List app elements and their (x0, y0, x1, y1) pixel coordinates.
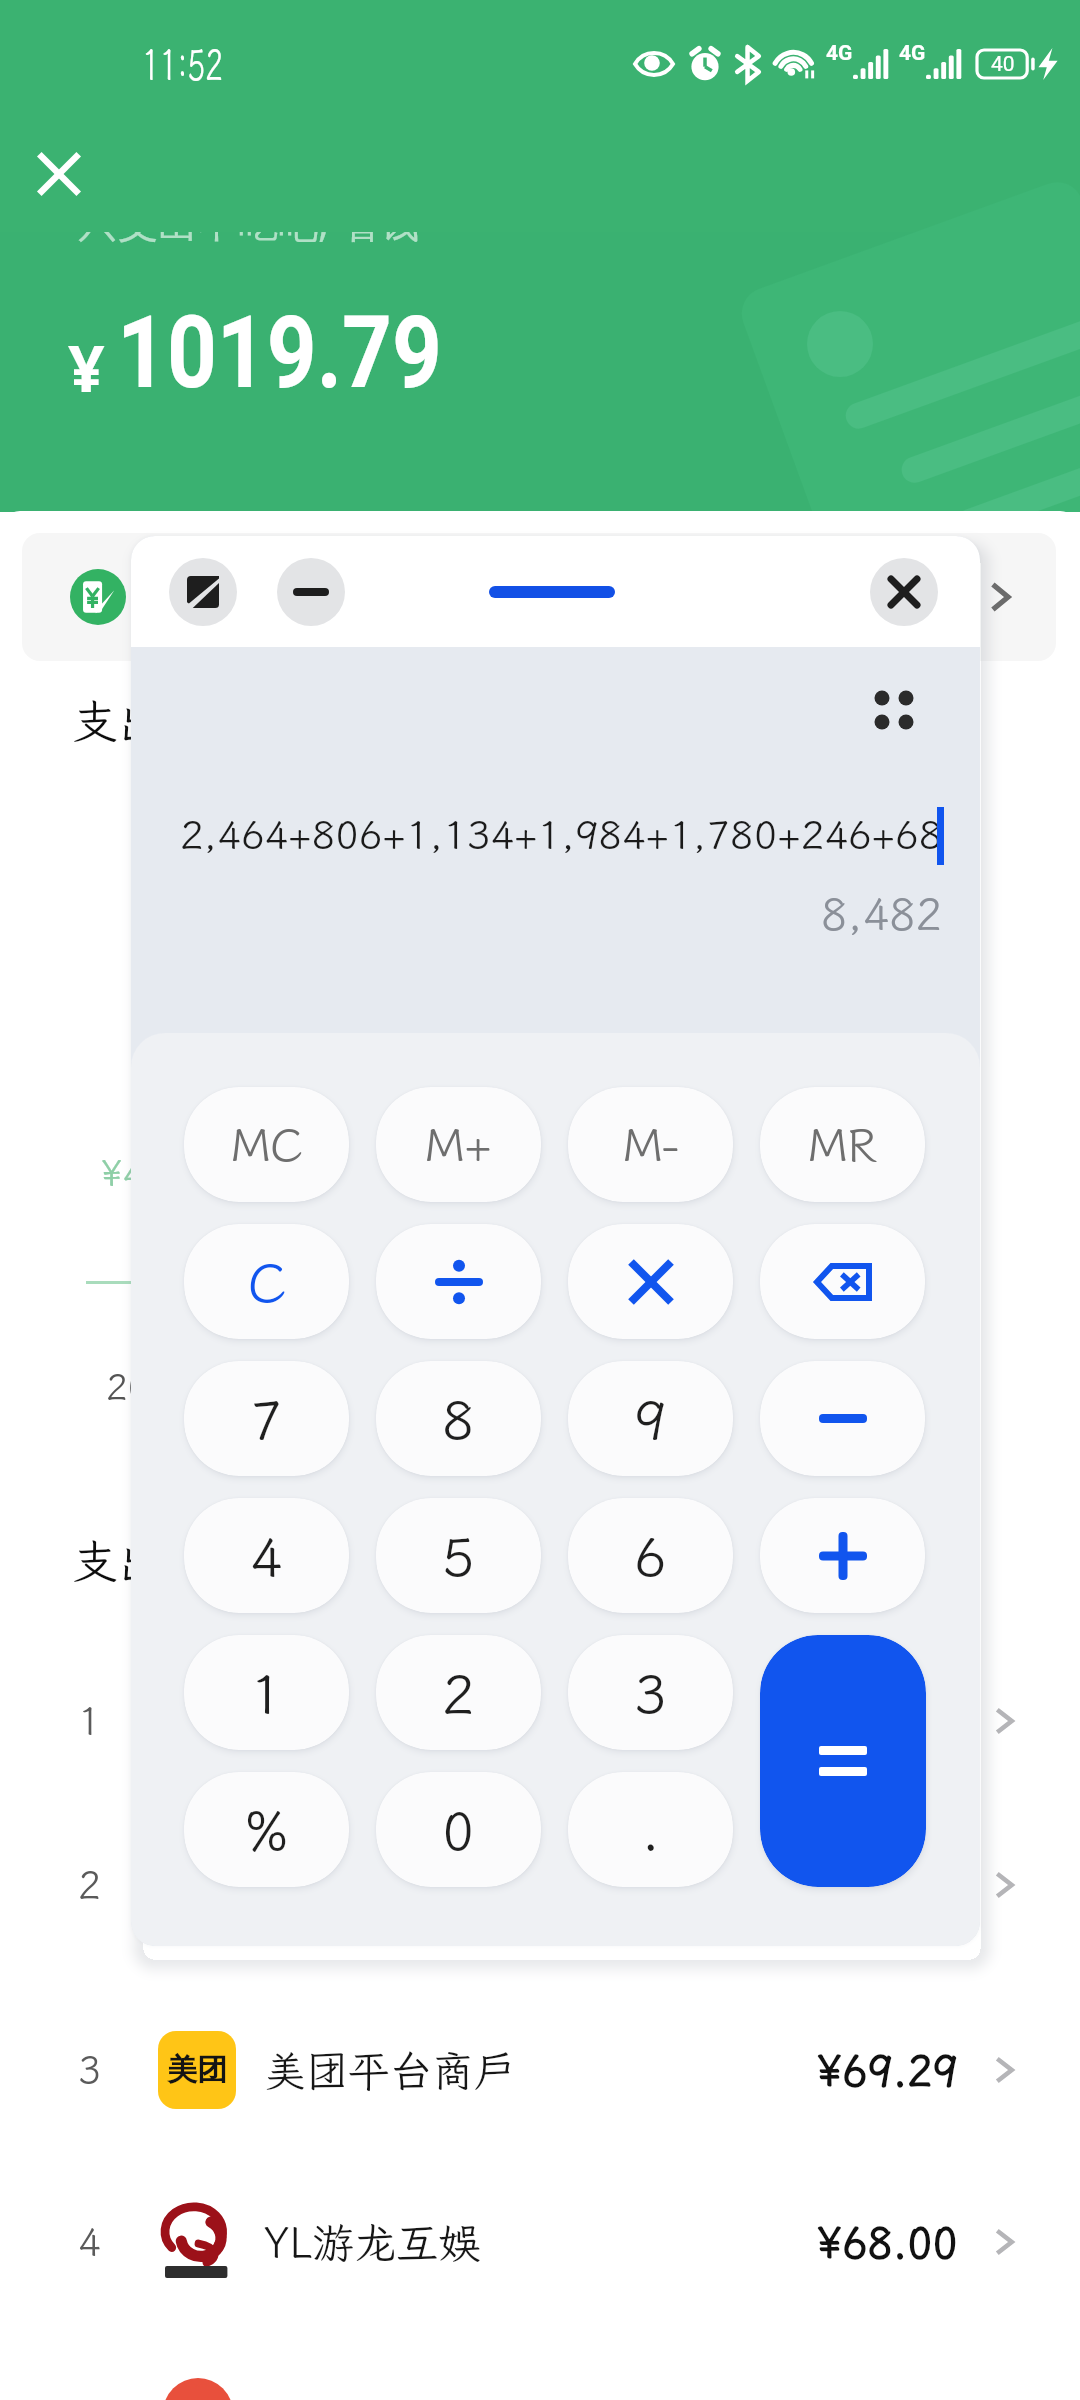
button[interactable]: % (184, 1772, 349, 1887)
staticText: MC (231, 1114, 303, 1175)
button[interactable]: Backspace (760, 1224, 925, 1339)
button[interactable]: 1 (184, 1635, 349, 1750)
button[interactable]: 3 (568, 1635, 733, 1750)
button[interactable]: M- (568, 1087, 733, 1202)
button[interactable]: Add (760, 1498, 925, 1613)
staticText: 3 (634, 1657, 667, 1728)
button[interactable]: . (568, 1772, 733, 1887)
button[interactable]: Close (30, 145, 88, 203)
button[interactable]: 4 (184, 1498, 349, 1613)
button[interactable]: MC (184, 1087, 349, 1202)
staticText: 6 (634, 1520, 667, 1591)
button[interactable]: Menu (869, 685, 919, 735)
button[interactable]: 2 (0, 1825, 1080, 1945)
staticText: 2 (442, 1657, 475, 1728)
staticText: 1 (78, 1696, 101, 1746)
button[interactable]: Divide (376, 1224, 541, 1339)
staticText: M- (623, 1114, 679, 1175)
button[interactable]: Subtract (760, 1361, 925, 1476)
button[interactable]: 7 (184, 1361, 349, 1476)
staticText: 40 (991, 52, 1015, 77)
staticText: 4G (899, 41, 926, 66)
button[interactable]: 5 (376, 1498, 541, 1613)
button[interactable]: Resize (169, 558, 237, 626)
staticText: C (248, 1246, 286, 1317)
staticText: 1 (250, 1657, 283, 1728)
staticText: 8,482 (821, 885, 942, 943)
staticText: 11:52 (142, 37, 223, 92)
button[interactable]: 4 (0, 2182, 1080, 2302)
button[interactable]: 2 (376, 1635, 541, 1750)
staticText: ¥69.29 (817, 2043, 958, 2098)
button[interactable]: MR (760, 1087, 925, 1202)
staticText: % (245, 1794, 289, 1865)
staticText: 美团 (167, 2051, 227, 2089)
staticText: MR (808, 1114, 877, 1175)
staticText: 支出 (72, 1531, 164, 1592)
button[interactable] (22, 533, 1056, 661)
button[interactable]: M+ (376, 1087, 541, 1202)
staticText: 1019.79 (117, 294, 442, 411)
staticText: 20 (106, 1363, 150, 1410)
staticText: 4 (250, 1520, 283, 1591)
button[interactable]: 1 (0, 1661, 1080, 1781)
button[interactable]: 9 (568, 1361, 733, 1476)
staticText: 4 (78, 2217, 101, 2267)
staticText: 支出 (72, 691, 164, 752)
staticText: 美团平台商户 (264, 2043, 517, 2098)
staticText: 2 (78, 1860, 101, 1910)
staticText: ¥68.00 (817, 2215, 958, 2270)
staticText: 7 (250, 1383, 283, 1454)
staticText: 4G (826, 41, 853, 66)
staticText: 9 (634, 1383, 667, 1454)
button[interactable]: Multiply (568, 1224, 733, 1339)
button[interactable]: Close calculator (870, 558, 938, 626)
button[interactable]: C (184, 1224, 349, 1339)
button[interactable]: Equals (760, 1635, 926, 1887)
staticText: 3 (78, 2045, 101, 2095)
staticText: ¥4 (101, 1149, 145, 1196)
button[interactable]: 8 (376, 1361, 541, 1476)
staticText: 2,464+806+1,134+1,984+1,780+246+68 (180, 809, 938, 861)
staticText: 只支出不吃吧, 省钱 (78, 194, 420, 249)
button[interactable]: 0 (376, 1772, 541, 1887)
staticText: 8 (442, 1383, 475, 1454)
staticText: 5 (442, 1520, 475, 1591)
staticText: YL游龙互娱 (264, 2215, 481, 2270)
button[interactable]: Minimize (277, 558, 345, 626)
staticText: 0 (442, 1794, 475, 1865)
staticText: . (641, 1794, 660, 1865)
button[interactable]: 3 (0, 2010, 1080, 2130)
staticText: M+ (425, 1114, 492, 1175)
button[interactable]: 6 (568, 1498, 733, 1613)
staticText: ¥ (68, 324, 105, 411)
button[interactable]: Drag handle (462, 564, 642, 620)
